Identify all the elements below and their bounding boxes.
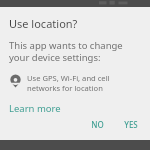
staticText: Use location? [9, 16, 78, 31]
staticText: Use GPS, Wi-Fi, and cell networks for lo… [27, 73, 144, 93]
button[interactable]: YES [119, 116, 143, 133]
staticText: YES [124, 119, 138, 130]
button[interactable]: NO [86, 116, 109, 133]
staticText: This app wants to change your device set… [9, 39, 142, 64]
button[interactable]: Learn more [9, 101, 61, 116]
staticText: Learn more [9, 102, 61, 115]
staticText: NO [91, 119, 104, 130]
other: Location [9, 74, 22, 88]
